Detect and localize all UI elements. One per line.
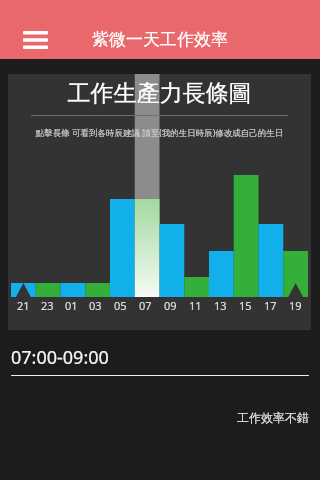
staticText: 工作效率不錯 <box>11 410 309 425</box>
staticText: 17 <box>264 298 277 313</box>
staticText: 01 <box>65 298 78 313</box>
button[interactable]: Menu <box>16 21 54 59</box>
staticText: 21 <box>17 298 30 313</box>
staticText: 09 <box>164 298 177 313</box>
staticText: 07:00-09:00 <box>11 345 109 370</box>
staticText: 11 <box>189 298 202 313</box>
button[interactable] <box>8 74 311 330</box>
staticText: 19 <box>289 298 302 313</box>
staticText: 23 <box>41 298 54 313</box>
staticText: 紫微一天工作效率 <box>92 29 228 50</box>
staticText: 15 <box>239 298 252 313</box>
staticText: 05 <box>114 298 127 313</box>
staticText: 03 <box>89 298 102 313</box>
staticText: 點擊長條 可看到各時辰建議 請至(我的生日時辰)修改成自己的生日 <box>12 127 307 139</box>
staticText: 07 <box>139 298 152 313</box>
staticText: 工作生產力長條圖 <box>8 79 311 108</box>
staticText: 13 <box>214 298 227 313</box>
